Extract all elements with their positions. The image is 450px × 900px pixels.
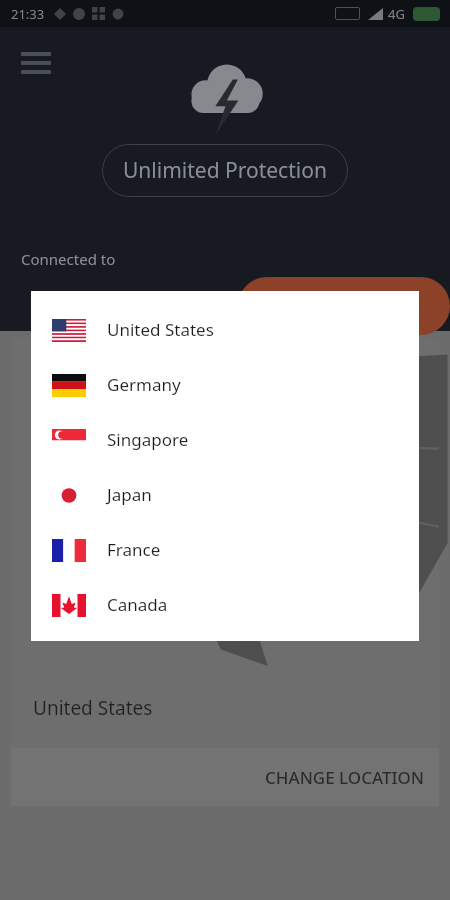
button[interactable]: France: [31, 522, 419, 577]
button[interactable]: Menu: [21, 52, 53, 78]
staticText: 4G: [388, 5, 405, 23]
button[interactable]: Singapore: [31, 412, 419, 467]
staticText: Germany: [107, 373, 181, 396]
staticText: Unlimited Protection: [123, 156, 327, 185]
staticText: France: [107, 538, 161, 561]
button[interactable]: Japan: [31, 467, 419, 522]
staticText: Singapore: [107, 428, 189, 451]
staticText: 21:33: [11, 5, 45, 23]
staticText: United States: [107, 318, 214, 341]
button[interactable]: Unlimited Protection: [102, 144, 348, 197]
button[interactable]: CHANGE LOCATION: [11, 748, 439, 806]
staticText: Canada: [107, 593, 168, 616]
staticText: CHANGE LOCATION: [265, 766, 424, 789]
button[interactable]: United States: [31, 302, 419, 357]
button[interactable]: Canada: [31, 577, 419, 632]
staticText: Japan: [107, 483, 152, 506]
button[interactable]: Germany: [31, 357, 419, 412]
staticText: United States: [33, 695, 153, 721]
button[interactable]: DISCONNECT: [238, 277, 450, 335]
staticText: Connected to: [21, 249, 116, 269]
